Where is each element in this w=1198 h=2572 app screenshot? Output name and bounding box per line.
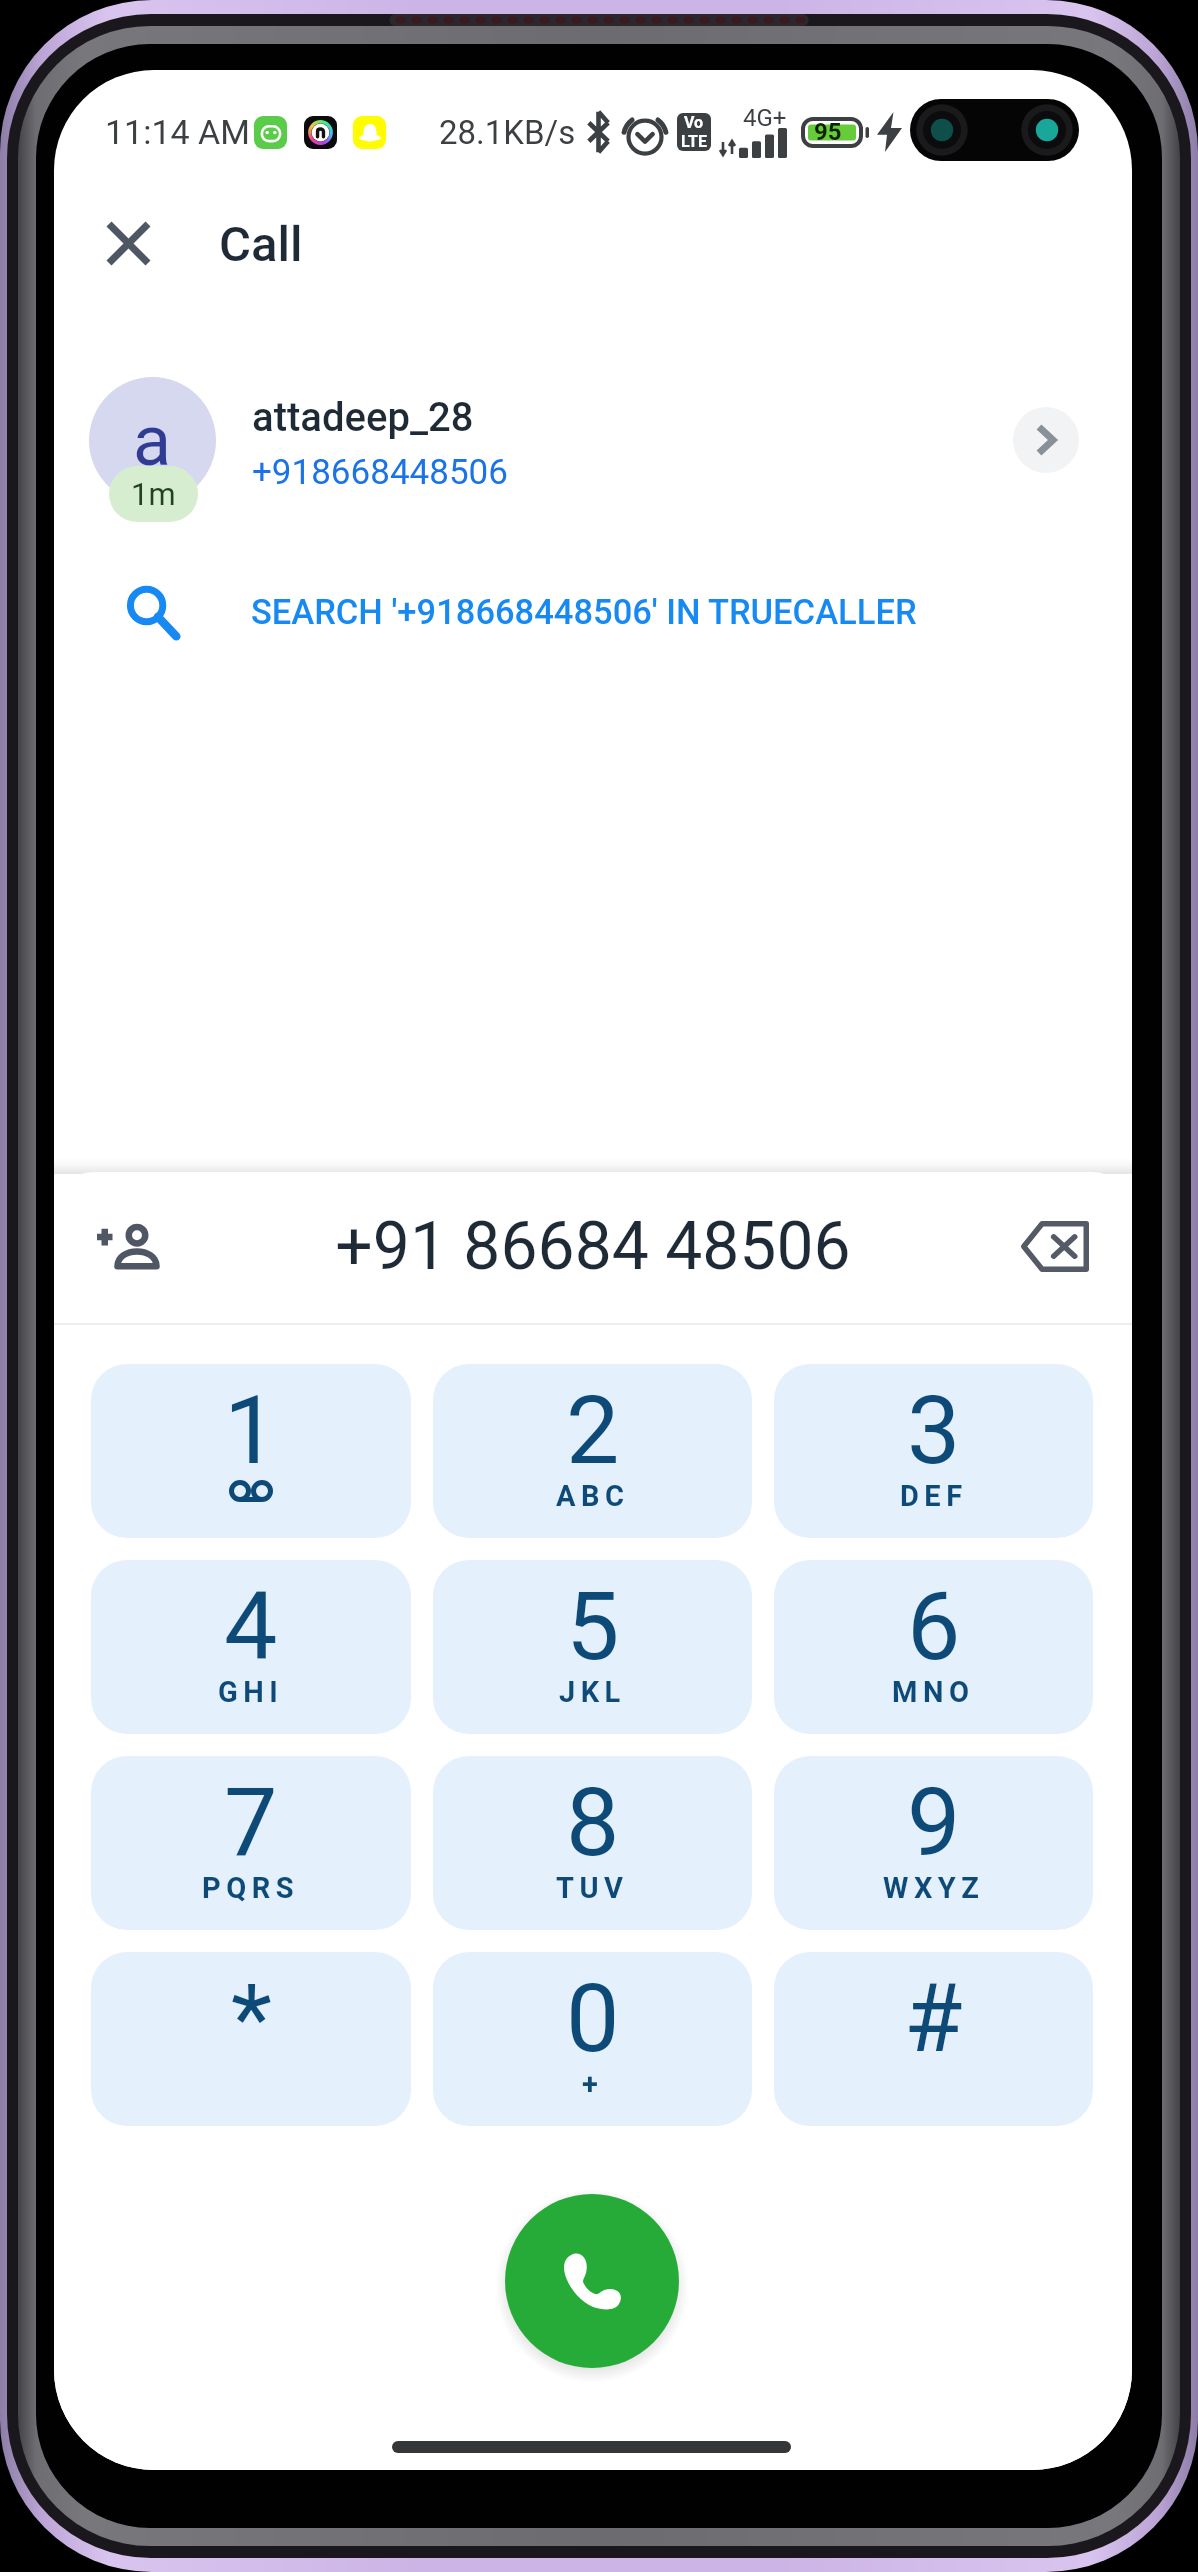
button[interactable]: 2: [433, 1364, 752, 1538]
staticText: +918668448506: [252, 452, 508, 493]
button[interactable]: *: [91, 1952, 411, 2126]
button[interactable]: 3: [774, 1364, 1093, 1538]
button[interactable]: Add to contacts: [80, 1198, 176, 1294]
staticText: 95: [814, 118, 842, 146]
staticText: PQRS: [202, 1871, 300, 1905]
staticText: attadeep_28: [252, 394, 474, 441]
staticText: #: [904, 1963, 963, 2074]
staticText: MNO: [892, 1675, 975, 1709]
staticText: 1m: [131, 476, 176, 512]
button[interactable]: Delete: [1007, 1198, 1103, 1294]
button[interactable]: 7: [91, 1756, 411, 1930]
button[interactable]: 0: [433, 1952, 752, 2126]
staticText: Call: [219, 216, 303, 273]
button[interactable]: Open contact details: [1013, 407, 1079, 473]
staticText: 8: [566, 1767, 620, 1878]
staticText: 28.1KB/s: [439, 113, 576, 152]
staticText: 5: [566, 1571, 620, 1682]
button[interactable]: SEARCH '+918668448506' IN TRUECALLER: [54, 552, 1132, 672]
staticText: LTE: [681, 132, 707, 151]
staticText: 9: [907, 1767, 961, 1878]
button[interactable]: 9: [774, 1756, 1093, 1930]
staticText: 4: [224, 1571, 278, 1682]
staticText: JKL: [559, 1675, 626, 1709]
button[interactable]: Call: [505, 2194, 679, 2368]
button[interactable]: a: [54, 360, 1132, 535]
staticText: SEARCH '+918668448506' IN TRUECALLER: [251, 592, 917, 632]
staticText: TUV: [556, 1871, 629, 1905]
staticText: 4G+: [743, 104, 787, 132]
staticText: a: [133, 400, 172, 482]
button[interactable]: 6: [774, 1560, 1093, 1734]
staticText: DEF: [900, 1479, 968, 1513]
button[interactable]: Close: [79, 194, 178, 293]
staticText: 1: [224, 1375, 278, 1486]
staticText: 3: [907, 1375, 961, 1486]
staticText: *: [231, 1963, 272, 2074]
staticText: GHI: [218, 1675, 284, 1709]
button[interactable]: 5: [433, 1560, 752, 1734]
staticText: Vo: [684, 113, 704, 132]
staticText: 7: [224, 1767, 278, 1878]
button[interactable]: 1: [91, 1364, 411, 1538]
staticText: +91 86684 48506: [335, 1208, 851, 1285]
button[interactable]: #: [774, 1952, 1093, 2126]
button[interactable]: 8: [433, 1756, 752, 1930]
staticText: 0: [566, 1963, 620, 2074]
button[interactable]: 4: [91, 1560, 411, 1734]
staticText: 2: [566, 1375, 620, 1486]
staticText: 6: [907, 1571, 961, 1682]
staticText: WXYZ: [883, 1871, 985, 1905]
staticText: ABC: [556, 1479, 630, 1513]
staticText: +: [582, 2067, 604, 2101]
staticText: 11:14 AM: [105, 112, 250, 152]
